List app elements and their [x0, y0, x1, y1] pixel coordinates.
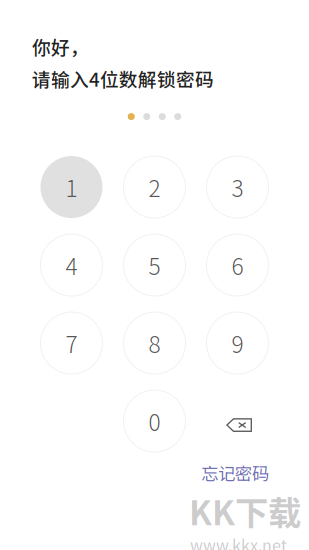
staticText: 忘记密码	[201, 460, 269, 485]
button[interactable]: 5	[123, 234, 185, 296]
staticText: 你好，	[32, 33, 89, 60]
staticText: 8	[148, 327, 160, 359]
button[interactable]: 忘记密码	[201, 456, 269, 489]
button[interactable]: 9	[206, 312, 268, 374]
staticText: 0	[148, 405, 160, 437]
button[interactable]: 8	[123, 312, 185, 374]
button[interactable]: 3	[206, 156, 268, 218]
staticText: 请输入4位数解锁密码	[32, 65, 214, 92]
staticText: 5	[148, 249, 160, 281]
staticText: 2	[148, 171, 160, 203]
button[interactable]: 6	[206, 234, 268, 296]
button[interactable]: 4	[40, 234, 102, 296]
button[interactable]: 0	[123, 390, 185, 452]
button[interactable]: 2	[123, 156, 185, 218]
button[interactable]: Delete	[206, 390, 268, 452]
staticText: 4	[65, 249, 77, 281]
staticText: 1	[65, 171, 77, 203]
staticText: 7	[65, 327, 77, 359]
staticText: KK下载	[189, 487, 301, 535]
button[interactable]: 1	[40, 156, 102, 218]
staticText: 3	[231, 171, 243, 203]
staticText: 6	[231, 249, 243, 281]
button[interactable]: 7	[40, 312, 102, 374]
staticText: 9	[231, 327, 243, 359]
staticText: www.kkx.net	[190, 533, 287, 550]
